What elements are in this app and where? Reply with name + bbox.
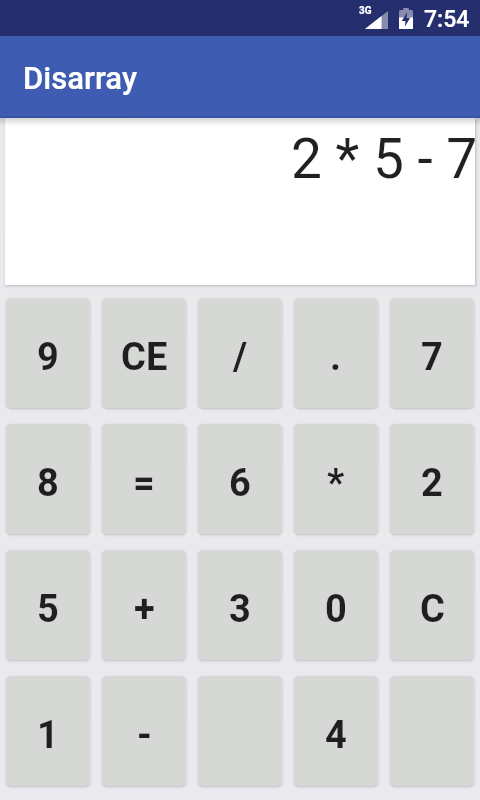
button[interactable]: 5 <box>6 550 90 660</box>
staticText: CE <box>121 335 168 380</box>
button[interactable]: 2 <box>390 424 474 534</box>
staticText: 0 <box>325 587 347 632</box>
button[interactable]: 8 <box>6 424 90 534</box>
button[interactable]: = <box>102 424 186 534</box>
staticText: / <box>233 335 248 380</box>
button[interactable]: + <box>102 550 186 660</box>
staticText: Disarray <box>23 60 137 96</box>
button[interactable]: - <box>102 676 186 786</box>
staticText: * <box>327 461 345 506</box>
button[interactable]: 1 <box>6 676 90 786</box>
button[interactable]: * <box>294 424 378 534</box>
staticText: 8 <box>37 461 59 506</box>
staticText: 2 <box>421 461 443 506</box>
button[interactable]: 4 <box>294 676 378 786</box>
button[interactable]: 9 <box>6 298 90 408</box>
button[interactable]: 0 <box>294 550 378 660</box>
staticText: 6 <box>229 461 251 506</box>
button[interactable]: / <box>198 298 282 408</box>
staticText: - <box>137 713 152 758</box>
staticText: = <box>133 461 155 506</box>
button[interactable]: C <box>390 550 474 660</box>
button[interactable]: 6 <box>198 424 282 534</box>
staticText: 9 <box>37 335 59 380</box>
staticText: 1 <box>37 713 59 758</box>
staticText: + <box>134 587 155 632</box>
staticText: 4 <box>325 713 347 758</box>
button[interactable]: 7 <box>390 298 474 408</box>
staticText: 5 <box>37 587 59 632</box>
staticText: 3 <box>229 587 251 632</box>
staticText: 2 * 5 - 7 <box>291 127 475 191</box>
staticText: 7:54 <box>424 6 470 33</box>
button[interactable]: CE <box>102 298 186 408</box>
staticText: C <box>420 587 445 632</box>
staticText: 3G <box>359 5 372 17</box>
button[interactable]: . <box>294 298 378 408</box>
button[interactable]: 3 <box>198 550 282 660</box>
staticText: 7 <box>421 335 443 380</box>
staticText: . <box>330 335 342 380</box>
